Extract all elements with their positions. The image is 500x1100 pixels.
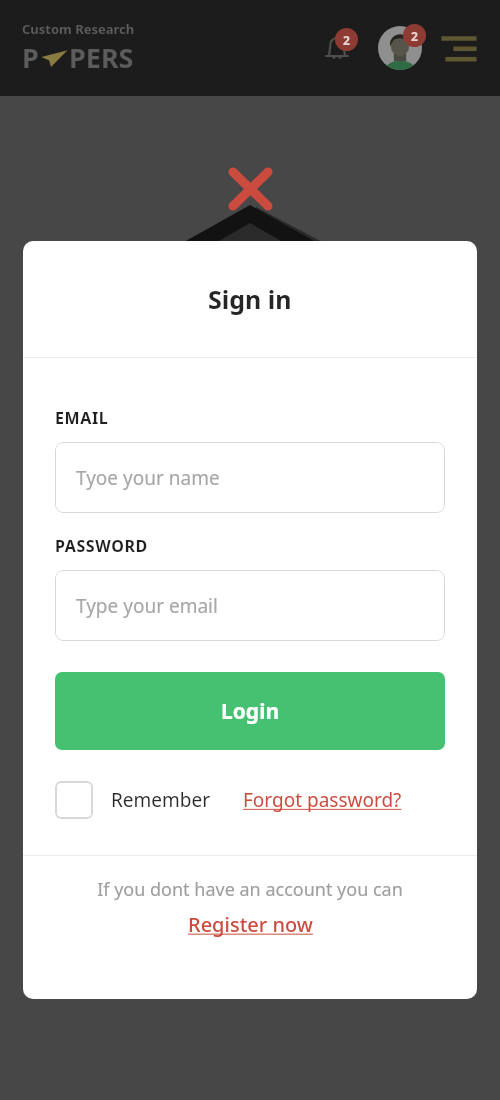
button[interactable]: Register now <box>188 911 313 938</box>
staticText: Sign in <box>208 282 292 316</box>
staticText: If you dont have an account you can <box>23 877 477 902</box>
staticText: Custom Research <box>22 20 135 38</box>
staticText: Tyoe your name <box>76 465 220 491</box>
staticText: PERS <box>69 39 134 76</box>
button[interactable]: Notifications <box>314 25 360 71</box>
staticText: Remember <box>111 787 211 813</box>
button[interactable]: Login <box>55 672 445 750</box>
button[interactable]: Menu <box>436 25 482 71</box>
button[interactable]: Remember <box>55 781 211 819</box>
button[interactable]: Tyoe your name <box>55 442 445 513</box>
button[interactable]: Profile <box>376 24 424 72</box>
staticText: P <box>22 39 39 76</box>
staticText: Login <box>221 697 280 726</box>
button[interactable]: Forgot password? <box>243 787 402 813</box>
staticText: 2 <box>411 28 418 44</box>
button[interactable]: Type your email <box>55 570 445 641</box>
staticText: Register now <box>188 911 313 938</box>
staticText: Type your email <box>76 593 218 619</box>
staticText: PASSWORD <box>55 535 148 557</box>
staticText: Forgot password? <box>243 787 402 813</box>
staticText: 2 <box>343 32 350 48</box>
staticText: EMAIL <box>55 407 109 429</box>
